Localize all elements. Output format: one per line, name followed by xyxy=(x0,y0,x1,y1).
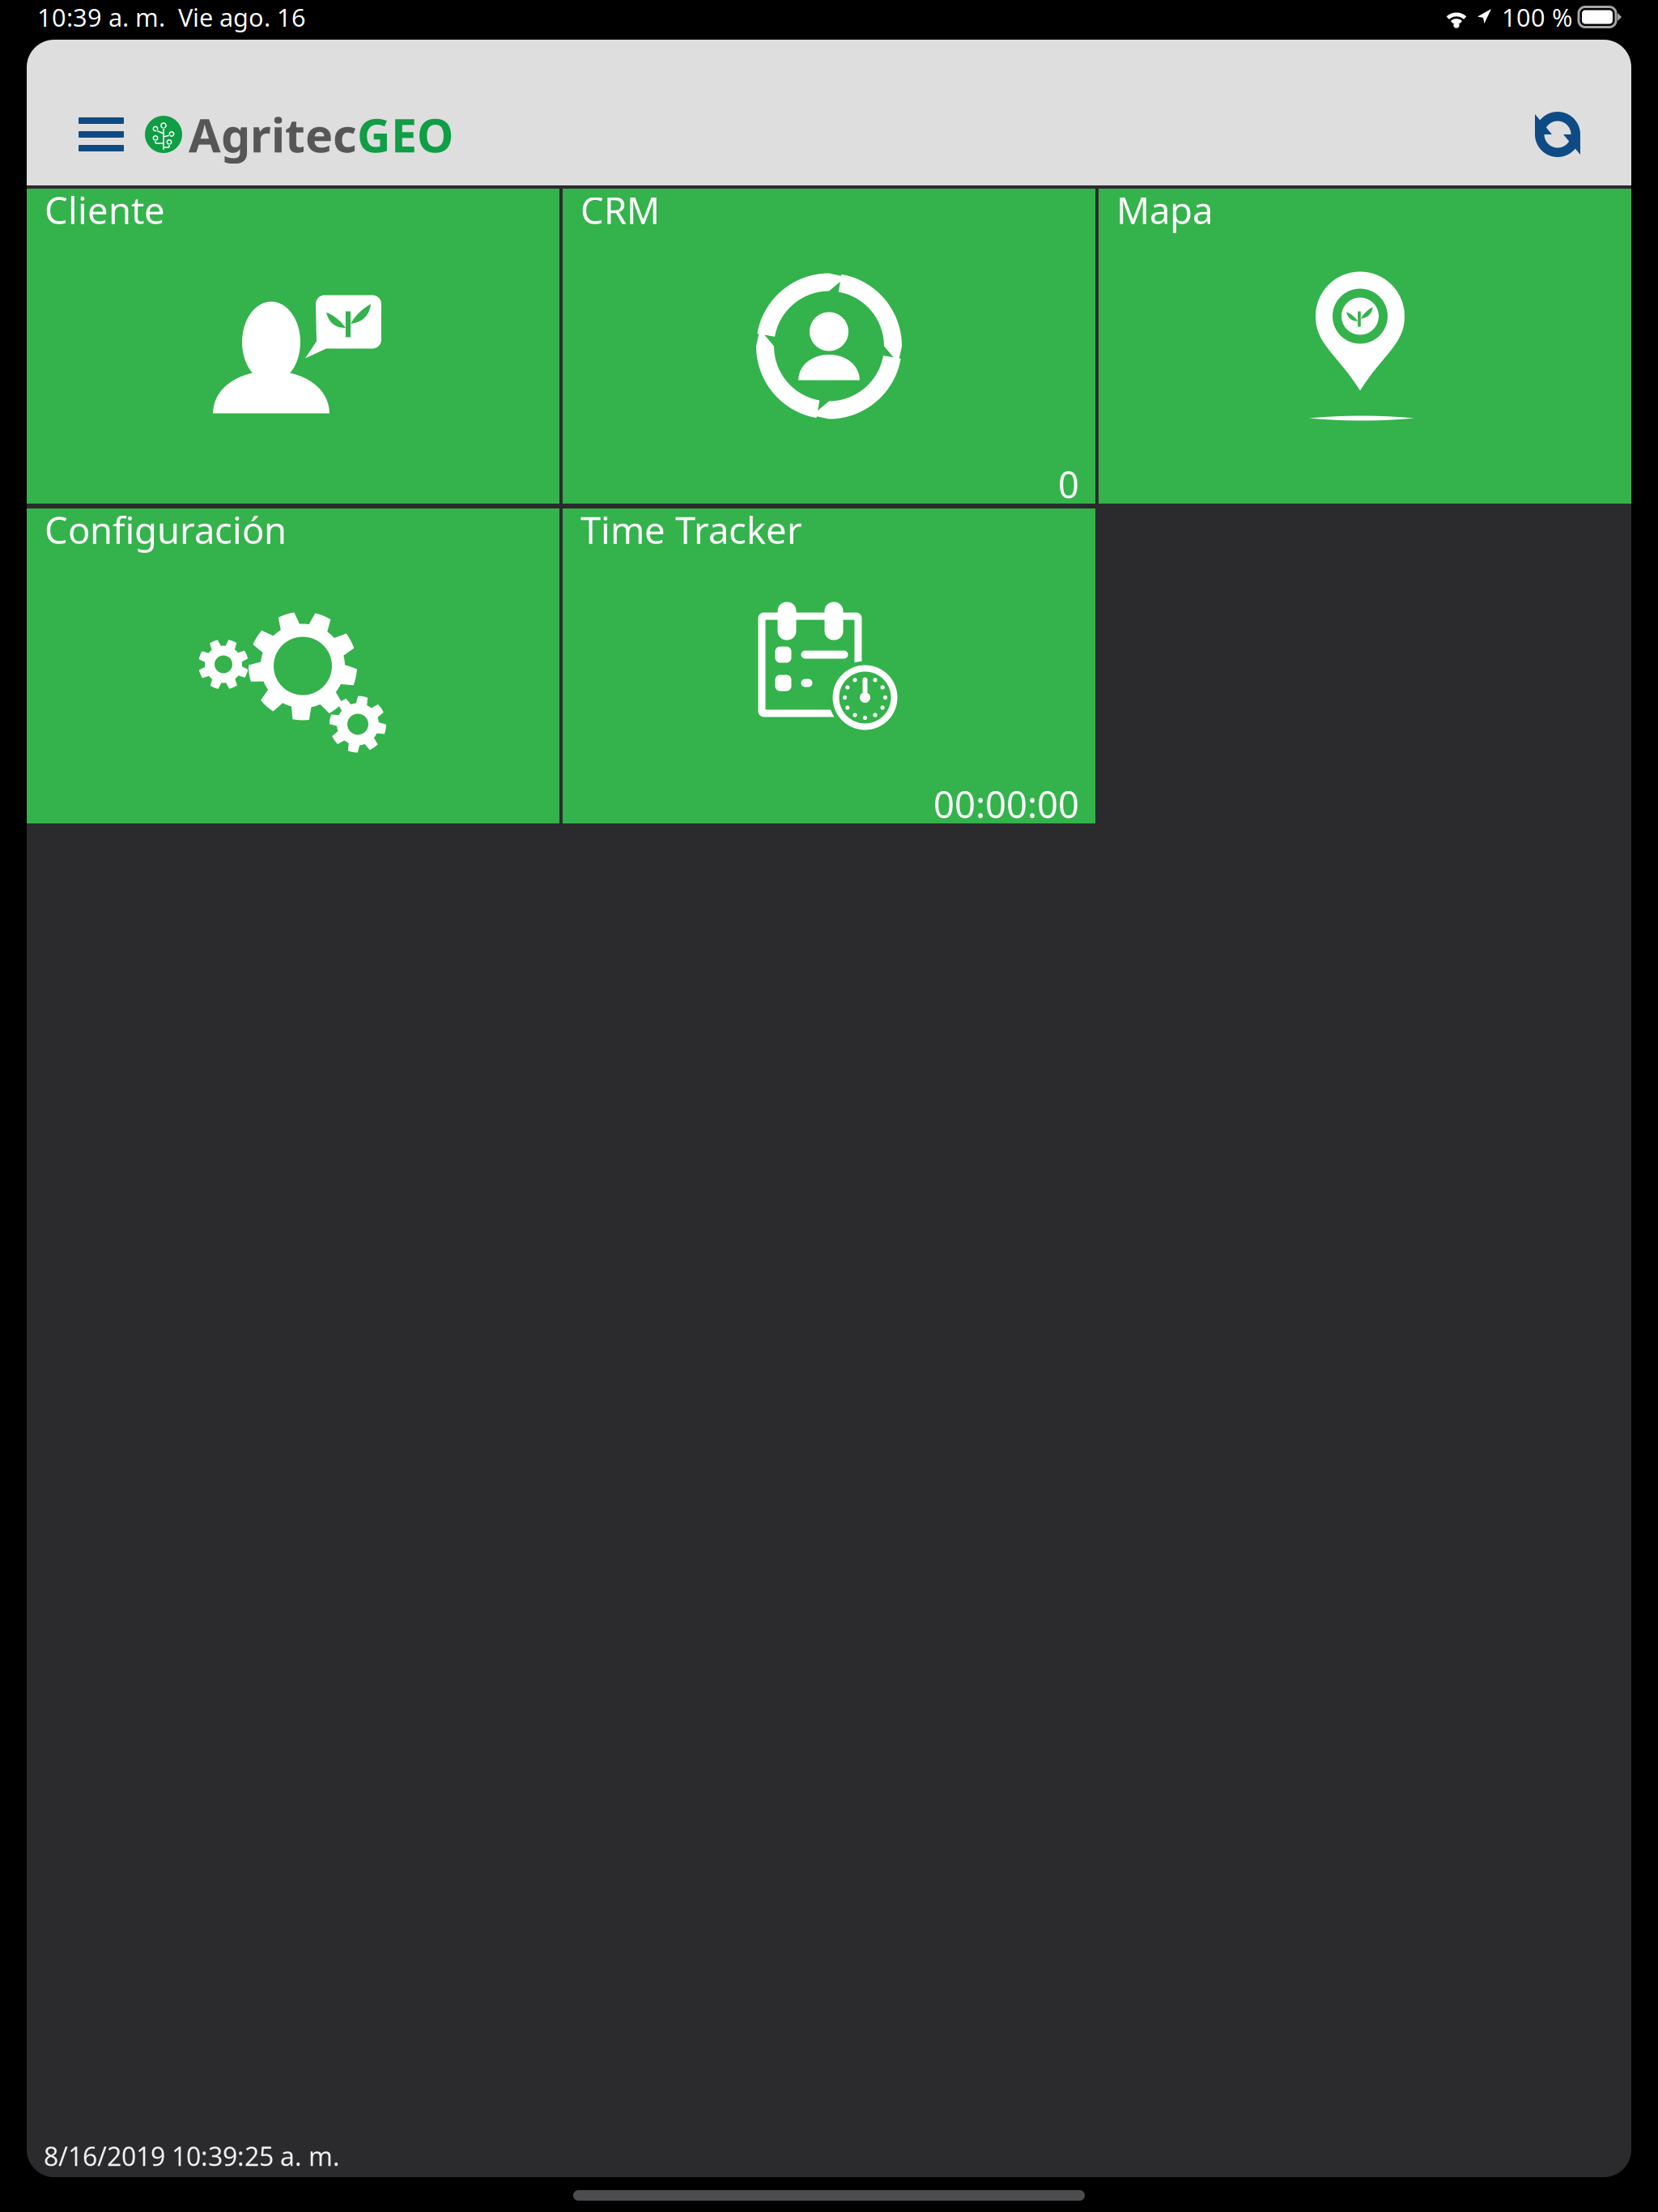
button[interactable]: Refresh xyxy=(1511,102,1631,167)
staticText: GEO xyxy=(357,104,453,165)
staticText: Vie ago. 16 xyxy=(178,0,306,33)
button[interactable]: Configuración xyxy=(27,508,559,823)
staticText: 00:00:00 xyxy=(933,780,1079,828)
button[interactable]: CRM xyxy=(563,189,1095,504)
staticText: CRM xyxy=(580,185,660,234)
staticText: Configuración xyxy=(45,505,287,554)
button[interactable]: Menu xyxy=(27,108,145,161)
staticText: 8/16/2019 10:39:25 a. m. xyxy=(44,2139,340,2173)
staticText: Cliente xyxy=(45,185,165,234)
button[interactable]: Time Tracker xyxy=(563,508,1095,823)
staticText: 0 xyxy=(1058,460,1079,508)
staticText: Time Tracker xyxy=(580,505,802,554)
staticText: Mapa xyxy=(1116,185,1213,234)
staticText: 100 % xyxy=(1502,0,1572,33)
staticText: Agritec xyxy=(189,104,357,165)
button[interactable]: Cliente xyxy=(27,189,559,504)
button[interactable]: Mapa xyxy=(1099,189,1631,504)
staticText: 10:39 a. m. xyxy=(37,0,165,33)
